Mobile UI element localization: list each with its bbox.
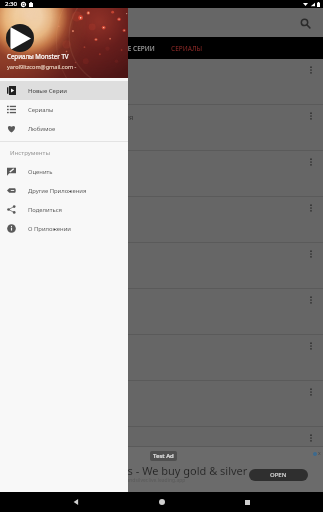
staticText: Сериалы: [28, 106, 54, 114]
button[interactable]: More options: [302, 107, 320, 125]
button[interactable]: More options: [302, 429, 320, 447]
button[interactable]: Стрела: [0, 243, 323, 289]
staticText: Test Ad: [153, 452, 174, 460]
staticText: goldandsilver.live.leading.app: [116, 477, 186, 484]
button[interactable]: More options: [302, 291, 320, 309]
staticText: О Приложении: [28, 225, 71, 233]
button[interactable]: НОВЫЕ СЕРИИ: [108, 37, 155, 59]
staticText: x: [318, 450, 321, 457]
button[interactable]: More options: [302, 337, 320, 355]
button[interactable]: Search: [295, 13, 315, 33]
button[interactable]: Сверхъестественное (13 сезона): [0, 59, 323, 105]
button[interactable]: Ривердэйл: [0, 427, 323, 447]
button[interactable]: Другие Приложения: [0, 181, 128, 200]
button[interactable]: OPEN: [249, 469, 308, 481]
button[interactable]: Ходячие мертвецы 8 сезон 5 серия: [0, 105, 323, 151]
button[interactable]: Новые Серии: [0, 81, 128, 100]
button[interactable]: Оценить: [0, 162, 128, 181]
button[interactable]: More options: [302, 61, 320, 79]
button[interactable]: СЕРИАЛЫ: [171, 37, 203, 59]
button[interactable]: Test Ad: [0, 447, 323, 492]
staticText: ...ds - We buy gold & silver: [112, 463, 248, 478]
button[interactable]: Очень странные дела (2 сезон): [0, 151, 323, 197]
staticText: OPEN: [270, 471, 287, 479]
staticText: Сериалы Monster TV: [7, 52, 69, 60]
button[interactable]: Легенды: [0, 289, 323, 335]
button[interactable]: Флэш 4 сезон 1 серия: [0, 197, 323, 243]
button[interactable]: Home: [152, 492, 172, 512]
staticText: Очень странные дела (2 сезон): [6, 158, 119, 168]
staticText: НОВЫЕ СЕРИИ: [108, 44, 155, 53]
button[interactable]: Profile: [6, 24, 34, 52]
button[interactable]: Back: [66, 492, 86, 512]
button[interactable]: More options: [302, 153, 320, 171]
staticText: СЕРИАЛЫ: [171, 44, 203, 53]
staticText: yarol9ltzcom@gmail.com -: [7, 63, 77, 71]
button[interactable]: Готэм: [0, 335, 323, 381]
staticText: Ходячие мертвецы 8 сезон 5 серия: [6, 112, 134, 122]
button[interactable]: Поделиться: [0, 200, 128, 219]
button[interactable]: Люцифер: [0, 381, 323, 427]
staticText: Инструменты: [10, 148, 51, 156]
staticText: Оценить: [28, 168, 53, 176]
staticText: Флэш 4 сезон 1 серия: [6, 204, 85, 214]
button[interactable]: More options: [302, 245, 320, 263]
staticText: Любимое: [28, 125, 56, 133]
staticText: Другие Приложения: [28, 187, 87, 195]
button[interactable]: О Приложении: [0, 219, 128, 238]
button[interactable]: Recents: [237, 492, 257, 512]
button[interactable]: Любимое: [0, 119, 128, 138]
staticText: Новые Серии: [28, 87, 68, 95]
staticText: Поделиться: [28, 206, 62, 214]
staticText: 2:30: [5, 0, 17, 8]
button[interactable]: More options: [302, 199, 320, 217]
button[interactable]: More options: [302, 383, 320, 401]
button[interactable]: Сериалы: [0, 100, 128, 119]
staticText: Сверхъестественное (13 сезона): [6, 66, 123, 76]
